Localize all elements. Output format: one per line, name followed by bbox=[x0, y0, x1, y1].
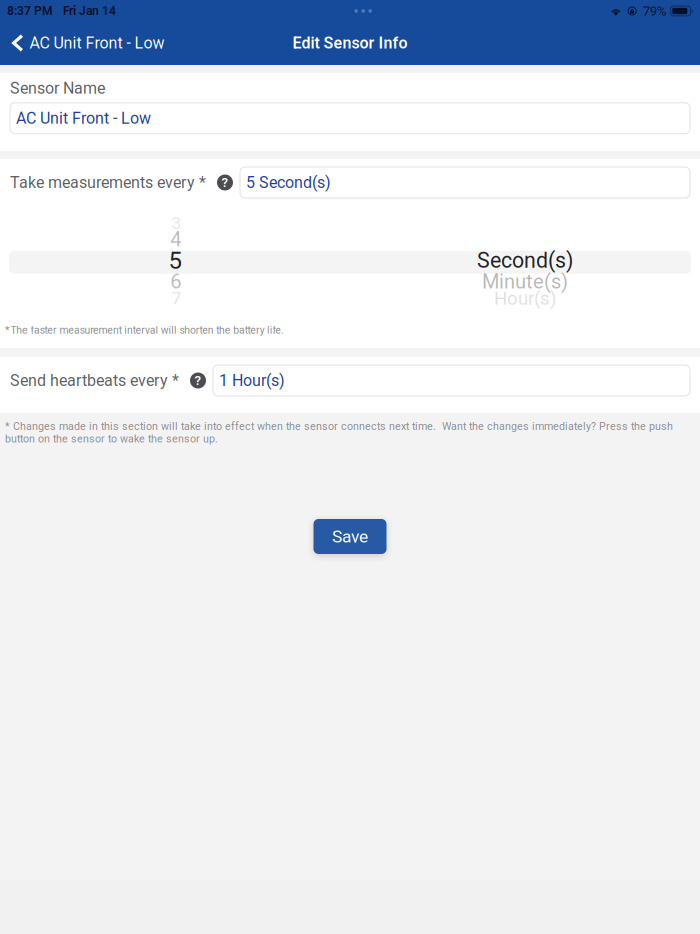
staticText: 6 bbox=[170, 270, 181, 293]
staticText: Send heartbeats every * bbox=[10, 371, 179, 390]
staticText: Fri Jan 14 bbox=[63, 4, 116, 18]
staticText: Sensor Name bbox=[10, 79, 105, 98]
button[interactable]: 1 Hour(s) bbox=[213, 365, 690, 396]
staticText: 7 bbox=[171, 288, 181, 308]
staticText: Edit Sensor Info bbox=[292, 34, 407, 52]
button[interactable]: 5 Second(s) bbox=[240, 167, 690, 198]
staticText: 4 bbox=[170, 228, 181, 251]
staticText: AC Unit Front - Low bbox=[16, 109, 151, 128]
staticText: 5 bbox=[168, 246, 181, 275]
staticText: 8:37 PM bbox=[7, 4, 53, 18]
staticText: Take measurements every * bbox=[10, 173, 206, 192]
button[interactable]: AC Unit Front - Low bbox=[10, 103, 690, 134]
staticText: Hour(s) bbox=[494, 287, 556, 309]
staticText: Save bbox=[332, 526, 368, 547]
staticText: 3 bbox=[171, 213, 181, 233]
staticText: AC Unit Front - Low bbox=[30, 34, 165, 52]
staticText: Minute(s) bbox=[482, 270, 568, 293]
staticText: 1 Hour(s) bbox=[219, 371, 285, 390]
staticText: * Changes made in this section will take… bbox=[5, 420, 673, 445]
staticText: ? bbox=[221, 175, 228, 190]
button[interactable]: Save bbox=[313, 519, 386, 554]
staticText: 79% bbox=[643, 3, 667, 19]
staticText: Second(s) bbox=[477, 248, 573, 273]
staticText: * The faster measurement interval will s… bbox=[5, 324, 284, 336]
button[interactable]: Back to AC Unit Front - Low bbox=[0, 21, 175, 64]
staticText: 5 Second(s) bbox=[246, 173, 331, 192]
staticText: ? bbox=[194, 373, 201, 388]
